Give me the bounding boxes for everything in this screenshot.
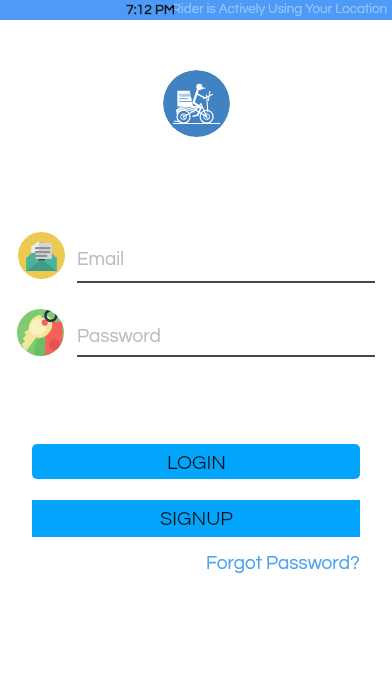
other: Rider app logo (163, 70, 230, 137)
button[interactable]: Password (12, 305, 380, 361)
staticText: Rider is Actively Using Your Location (172, 2, 388, 16)
staticText: Password (77, 326, 161, 346)
button[interactable]: Forgot Password? (196, 549, 360, 577)
staticText: Forgot Password? (206, 553, 360, 573)
button[interactable]: SIGNUP (32, 500, 360, 537)
button[interactable]: LOGIN (32, 444, 360, 479)
staticText: 7:12 PM (126, 3, 175, 17)
button[interactable]: Email (12, 228, 380, 284)
staticText: Email (77, 249, 125, 269)
staticText: LOGIN (167, 453, 226, 474)
staticText: SIGNUP (160, 509, 233, 530)
